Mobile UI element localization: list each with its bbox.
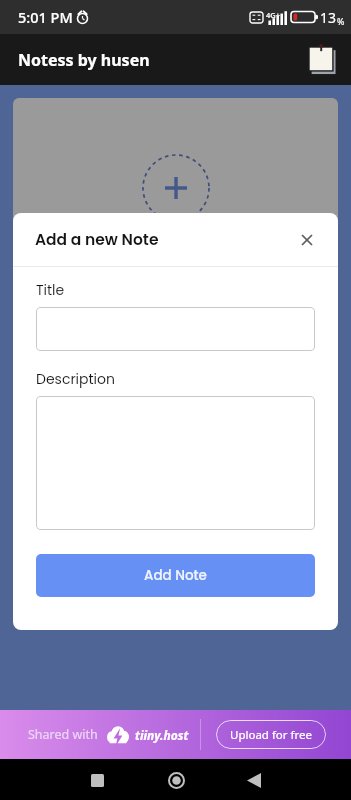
button[interactable]: Title input — [36, 307, 315, 351]
staticText: 13 — [320, 8, 337, 27]
staticText: tiiny.host — [135, 727, 189, 743]
button[interactable]: Notes — [306, 44, 338, 76]
button[interactable]: Back — [236, 762, 272, 798]
staticText: 4G+ — [266, 10, 281, 20]
staticText: Shared with — [28, 726, 98, 743]
staticText: 5:01 PM — [18, 7, 73, 27]
button[interactable]: Add note — [142, 154, 210, 222]
button[interactable]: Close dialog — [291, 224, 323, 256]
button[interactable]: Add Note — [36, 554, 315, 597]
staticText: Upload for free — [230, 727, 313, 743]
staticText: Title — [36, 280, 65, 300]
staticText: Description — [36, 369, 115, 389]
staticText: % — [337, 15, 345, 27]
staticText: Add Note — [144, 566, 207, 585]
button[interactable]: Home — [158, 762, 194, 798]
staticText: Notess by husen — [18, 49, 150, 71]
staticText: Add a new Note — [35, 229, 159, 251]
button[interactable]: Description input — [36, 396, 315, 530]
button[interactable]: Recent apps — [79, 762, 115, 798]
button[interactable]: Upload for free — [216, 720, 326, 749]
